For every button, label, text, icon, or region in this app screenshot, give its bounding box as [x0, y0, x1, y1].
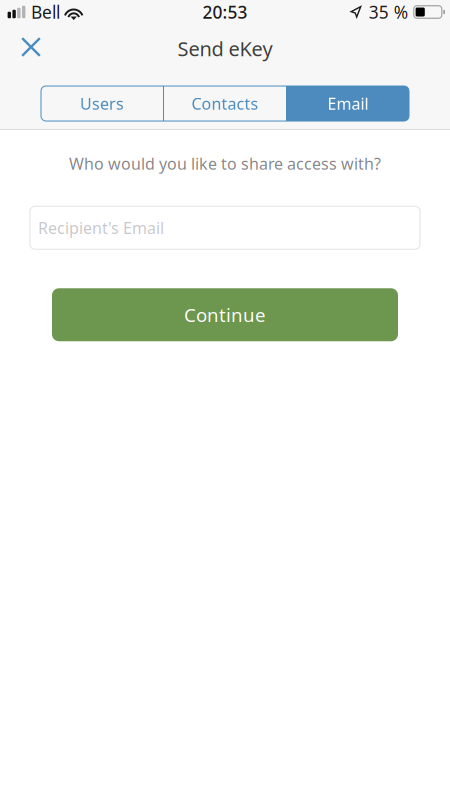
- staticText: 20:53: [202, 0, 247, 23]
- button[interactable]: Close: [0, 24, 55, 66]
- staticText: 35 %: [369, 0, 408, 23]
- button[interactable]: Contacts: [164, 86, 286, 121]
- button[interactable]: Email: [287, 86, 409, 121]
- staticText: Users: [80, 93, 124, 114]
- staticText: Send eKey: [177, 35, 272, 62]
- button[interactable]: Recipient's Email: [30, 206, 420, 249]
- button[interactable]: Users: [41, 86, 163, 121]
- button[interactable]: Continue: [52, 288, 398, 341]
- staticText: Contacts: [191, 93, 258, 114]
- staticText: Recipient's Email: [38, 217, 164, 238]
- staticText: Continue: [184, 302, 266, 327]
- staticText: Bell: [31, 0, 60, 23]
- staticText: Email: [327, 93, 368, 114]
- staticText: Who would you like to share access with?: [69, 153, 381, 174]
